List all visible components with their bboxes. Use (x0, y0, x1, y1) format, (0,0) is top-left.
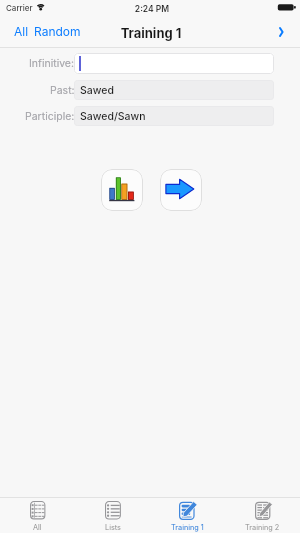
button[interactable]: Next (272, 19, 296, 47)
staticText: Carrier (6, 3, 33, 13)
staticText: Training 2 (245, 523, 280, 532)
staticText: Past: (50, 84, 75, 97)
button[interactable]: Statistics (101, 169, 143, 211)
button[interactable]: Training 1 (150, 497, 225, 533)
button[interactable]: Random (32, 21, 83, 42)
button[interactable]: All (0, 497, 75, 533)
button[interactable]: Training 2 (225, 497, 300, 533)
staticText: All (14, 24, 29, 39)
button[interactable]: Lists (75, 497, 150, 533)
staticText: Lists (105, 523, 121, 532)
button[interactable]: Infinitive: (74, 53, 274, 74)
button[interactable]: All (12, 21, 31, 42)
staticText: Sawed/Sawn (80, 110, 146, 123)
staticText: Training 1 (1, 25, 300, 41)
staticText: All (33, 523, 42, 532)
button[interactable]: Participle: Sawed/Sawn (74, 106, 274, 126)
staticText: Sawed (80, 84, 114, 97)
staticText: 2:24 PM (2, 4, 300, 14)
staticText: Infinitive: (29, 57, 75, 70)
staticText: Participle: (25, 110, 75, 123)
button[interactable]: Next word (160, 169, 202, 211)
staticText: Training 1 (171, 523, 204, 532)
button[interactable]: Past: Sawed (74, 80, 274, 100)
staticText: Random (34, 24, 81, 39)
